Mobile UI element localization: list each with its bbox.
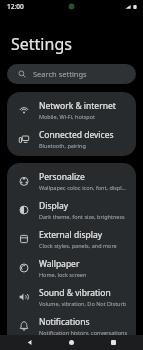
button[interactable]: Notifications (7, 311, 136, 340)
staticText: Wallpaper (39, 258, 80, 270)
staticText: Connected devices (39, 129, 114, 141)
staticText: Gestures (39, 340, 75, 347)
staticText: Personalize (39, 171, 85, 183)
staticText: Volume, vibration, Do Not Disturb (39, 300, 127, 307)
button[interactable]: Display (7, 195, 136, 224)
button[interactable]: Home (66, 337, 77, 348)
staticText: External display (39, 229, 103, 241)
staticText: Dark theme, font size, brightness (39, 213, 125, 220)
staticText: Search settings (33, 69, 87, 79)
staticText: Notifications (39, 316, 90, 328)
staticText: Home, lock screen (39, 271, 87, 278)
staticText: Bluetooth, pairing (39, 142, 86, 149)
staticText: Clock styles, panels, and more (39, 242, 117, 249)
button[interactable]: Network & internet (7, 95, 136, 124)
staticText: 12:00 (7, 2, 24, 11)
button[interactable]: Sound & vibration (7, 282, 136, 311)
button[interactable]: Personalize (7, 166, 136, 195)
staticText: Notification history, conversations (39, 329, 128, 336)
button[interactable]: Back (24, 337, 35, 348)
button[interactable]: Search settings (7, 64, 136, 84)
staticText: Settings (11, 33, 72, 55)
staticText: Sound & vibration (39, 287, 111, 299)
staticText: Network & internet (39, 100, 116, 112)
staticText: Display (39, 200, 68, 212)
button[interactable]: Recent apps (108, 337, 119, 348)
staticText: Mobile, Wi-Fi, hotspot (39, 113, 96, 120)
button[interactable]: Connected devices (7, 124, 136, 153)
button[interactable]: Gestures (7, 340, 136, 347)
staticText: Wallpaper, color, icon, font, display si… (39, 184, 128, 191)
button[interactable]: External display (7, 224, 136, 253)
button[interactable]: Wallpaper (7, 253, 136, 282)
